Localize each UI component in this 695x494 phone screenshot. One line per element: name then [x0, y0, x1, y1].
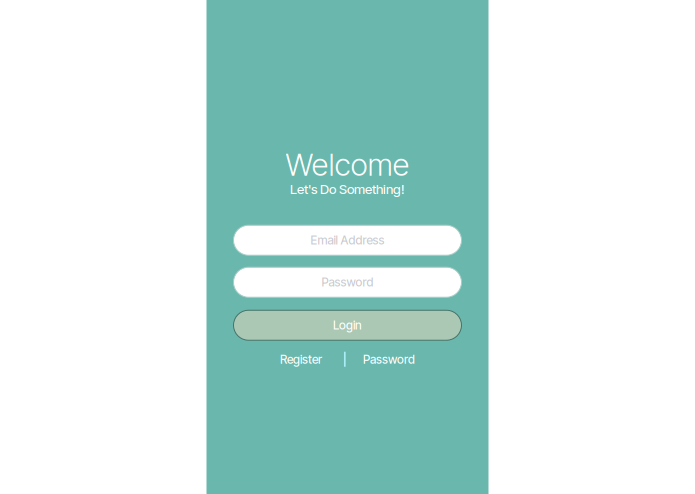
staticText: Login [333, 318, 362, 332]
button[interactable]: Password [363, 352, 415, 367]
staticText: | [343, 352, 347, 367]
button[interactable]: Password [233, 267, 461, 297]
button[interactable]: Email Address [233, 225, 461, 255]
staticText: Register [280, 352, 322, 367]
staticText: Email Address [310, 233, 384, 247]
button[interactable]: Login [233, 310, 461, 340]
staticText: Welcome [285, 146, 409, 183]
staticText: Let's Do Something! [290, 181, 405, 197]
button[interactable]: Register [280, 352, 322, 367]
staticText: Password [363, 352, 415, 367]
staticText: Password [321, 275, 373, 289]
